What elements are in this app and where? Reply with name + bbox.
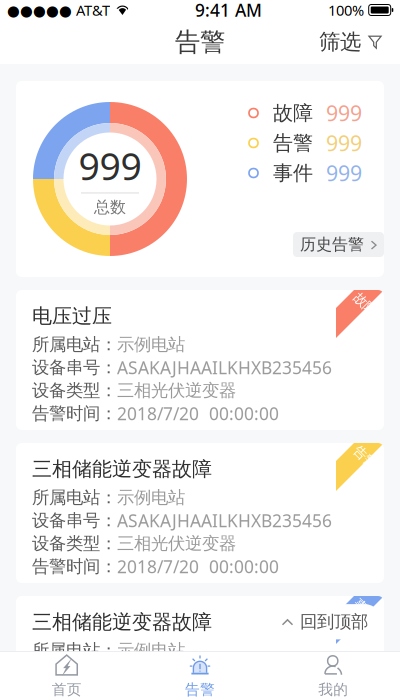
staticText: 设备串号： <box>32 663 117 684</box>
button[interactable]: 三相储能逆变器故障 <box>16 443 384 583</box>
staticText: 总数 <box>94 197 126 217</box>
button[interactable]: 电压过压 <box>16 290 384 430</box>
staticText: 所属电站： <box>32 334 117 355</box>
staticText: ASAKAJHAAILKHXB235456 <box>117 662 332 685</box>
staticText: 历史告警 <box>300 235 364 254</box>
staticText: 首页 <box>52 680 82 698</box>
staticText: 9:41 AM <box>195 0 262 21</box>
staticText: 电压过压 <box>32 304 112 328</box>
staticText: 2018/7/20 00:00:00 <box>117 402 279 425</box>
staticText: 999 <box>326 129 362 157</box>
staticText: 设备串号： <box>32 510 117 531</box>
staticText: 事件 <box>273 161 313 185</box>
staticText: 设备类型： <box>32 686 117 700</box>
staticText: 999 <box>326 99 362 127</box>
staticText: 告警时间： <box>32 403 117 424</box>
staticText: 999 <box>326 159 362 187</box>
staticText: 三相储能逆变器故障 <box>32 457 212 481</box>
button[interactable]: 历史告警 <box>293 232 384 257</box>
staticText: 告警时间： <box>32 556 117 577</box>
staticText: 设备串号： <box>32 357 117 378</box>
button[interactable]: 筛选 <box>305 19 400 65</box>
staticText: 所属电站： <box>32 640 117 661</box>
staticText: 回到顶部 <box>300 611 368 632</box>
staticText: 三相光伏逆变器 <box>117 533 236 554</box>
staticText: 三相光伏逆变器 <box>117 380 236 401</box>
staticText: 示例电站 <box>117 487 185 508</box>
staticText: 示例电站 <box>117 640 185 661</box>
staticText: 三相储能逆变器故障 <box>32 610 212 634</box>
staticText: 故障 <box>273 101 313 125</box>
staticText: 我的 <box>318 680 348 698</box>
staticText: 示例电站 <box>117 334 185 355</box>
staticText: 999 <box>78 141 141 190</box>
staticText: 三相光伏逆变器 <box>117 686 236 700</box>
staticText: 设备类型： <box>32 380 117 401</box>
staticText: 设备类型： <box>32 533 117 554</box>
staticText: 故障 <box>352 296 378 312</box>
staticText: 所属电站： <box>32 487 117 508</box>
button[interactable]: 回到顶部 <box>269 604 382 639</box>
staticText: 告警 <box>175 26 225 57</box>
button[interactable]: 我的 <box>267 652 400 700</box>
staticText: 事件 <box>352 602 378 618</box>
staticText: ASAKAJHAAILKHXB235456 <box>117 356 332 379</box>
staticText: 告警 <box>185 680 215 698</box>
staticText: 筛选 <box>319 29 361 55</box>
staticText: 告警 <box>273 131 313 155</box>
staticText: ASAKAJHAAILKHXB235456 <box>117 509 332 532</box>
staticText: 告警 <box>352 449 378 465</box>
button[interactable]: 三相储能逆变器故障 <box>16 596 384 700</box>
staticText: ●●●●● AT&T <box>7 0 110 20</box>
button[interactable]: 首页 <box>0 652 133 700</box>
staticText: 2018/7/20 00:00:00 <box>117 555 279 578</box>
staticText: 100% <box>328 0 364 20</box>
button[interactable]: 告警 <box>133 652 267 700</box>
